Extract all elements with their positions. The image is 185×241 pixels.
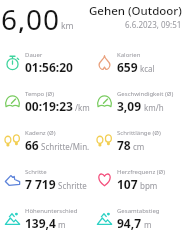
button[interactable]: Kalorien <box>92 43 185 82</box>
staticText: 139,4 <box>25 215 56 231</box>
staticText: m <box>58 219 66 230</box>
staticText: Kadenz (Ø) <box>25 129 56 137</box>
staticText: km/h <box>144 102 164 113</box>
staticText: 66 <box>25 137 39 153</box>
button[interactable]: Höhenunterschied <box>0 199 92 238</box>
staticText: 94,7 <box>117 215 142 231</box>
staticText: Schritte <box>58 180 87 191</box>
staticText: 01:56:20 <box>25 59 73 75</box>
staticText: 107 <box>117 176 138 192</box>
staticText: km <box>61 20 74 32</box>
button[interactable]: Geschwindigkeit (Ø) <box>92 82 185 121</box>
staticText: Geschwindigkeit (Ø) <box>117 90 174 98</box>
button[interactable]: Tempo (Ø) <box>0 82 92 121</box>
staticText: 6,00 <box>1 0 60 33</box>
staticText: kcal <box>140 63 155 74</box>
staticText: Kalorien <box>117 51 141 59</box>
staticText: 00:19:23 <box>25 98 73 114</box>
staticText: Schritte <box>25 168 47 176</box>
staticText: /km <box>75 102 90 113</box>
staticText: m <box>144 219 152 230</box>
staticText: Herzfrequenz (Ø) <box>117 168 166 176</box>
staticText: cm <box>133 141 145 152</box>
staticText: Dauer <box>25 51 43 59</box>
button[interactable]: Schritte <box>0 160 92 199</box>
button[interactable]: Gesamtabstieg <box>92 199 185 238</box>
staticText: Gesamtabstieg <box>117 207 160 215</box>
button[interactable]: Kadenz (Ø) <box>0 121 92 160</box>
staticText: 78 <box>117 137 131 153</box>
staticText: Höhenunterschied <box>25 207 78 215</box>
staticText: Schrittlänge (Ø) <box>117 129 161 137</box>
button[interactable]: Schrittlänge (Ø) <box>92 121 185 160</box>
staticText: 7 719 <box>25 176 56 192</box>
staticText: Gehen (Outdoor) <box>89 3 182 19</box>
staticText: 6.6.2023, 09:51 <box>125 19 182 30</box>
staticText: 3,09 <box>117 98 142 114</box>
button[interactable]: Herzfrequenz (Ø) <box>92 160 185 199</box>
staticText: Schritte/Min. <box>41 141 90 152</box>
staticText: 659 <box>117 59 138 75</box>
button[interactable]: Dauer <box>0 43 92 82</box>
staticText: Tempo (Ø) <box>25 90 55 98</box>
staticText: bpm <box>140 180 158 191</box>
